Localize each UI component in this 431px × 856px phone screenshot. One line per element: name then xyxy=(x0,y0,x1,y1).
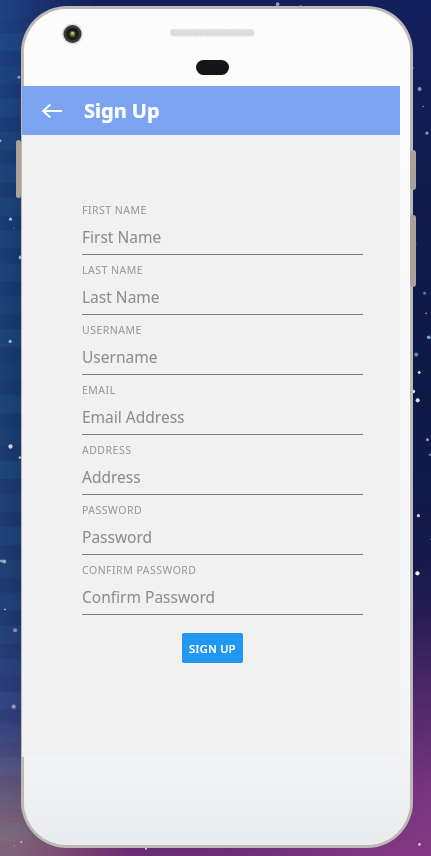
staticText: Confirm Password xyxy=(82,586,216,607)
button[interactable]: SIGN UP xyxy=(182,633,243,663)
staticText: Password xyxy=(82,526,153,547)
staticText: PASSWORD xyxy=(82,503,143,517)
staticText: Username xyxy=(82,346,158,367)
button[interactable]: USERNAME xyxy=(82,323,363,375)
button[interactable]: LAST NAME xyxy=(82,263,363,315)
button[interactable]: CONFIRM PASSWORD xyxy=(82,563,363,615)
button[interactable]: EMAIL xyxy=(82,383,363,435)
staticText: Email Address xyxy=(82,406,185,427)
staticText: Last Name xyxy=(82,286,160,307)
button[interactable]: ADDRESS xyxy=(82,443,363,495)
staticText: USERNAME xyxy=(82,323,142,337)
staticText: First Name xyxy=(82,226,162,247)
staticText: CONFIRM PASSWORD xyxy=(82,563,197,577)
button[interactable]: PASSWORD xyxy=(82,503,363,555)
staticText: Sign Up xyxy=(84,97,160,124)
staticText: ADDRESS xyxy=(82,443,132,457)
button[interactable]: Back xyxy=(32,91,72,131)
staticText: FIRST NAME xyxy=(82,203,147,217)
staticText: EMAIL xyxy=(82,383,116,397)
staticText: SIGN UP xyxy=(189,641,236,656)
staticText: Address xyxy=(82,466,141,487)
button[interactable]: FIRST NAME xyxy=(82,203,363,255)
staticText: LAST NAME xyxy=(82,263,144,277)
